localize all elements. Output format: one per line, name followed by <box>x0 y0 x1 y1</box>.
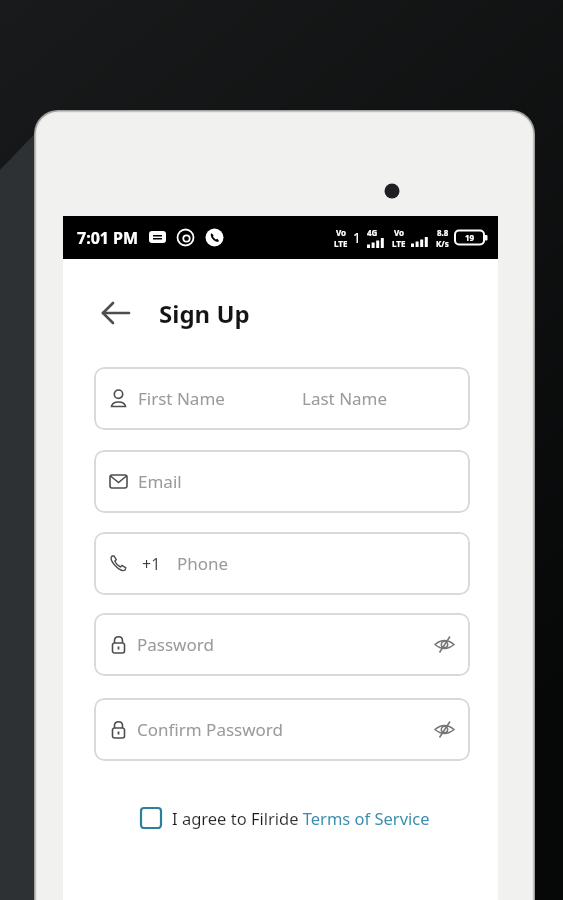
button[interactable]: Password <box>94 613 470 676</box>
staticText: 8.8 <box>437 227 449 238</box>
button[interactable] <box>434 635 455 654</box>
staticText: +1 <box>142 553 161 575</box>
staticText: 19 <box>465 232 475 243</box>
staticText: Password <box>137 633 214 656</box>
staticText: Sign Up <box>159 297 250 330</box>
staticText: Last Name <box>302 387 388 410</box>
button[interactable]: +1 <box>94 532 470 595</box>
button[interactable]: First Name <box>94 367 470 430</box>
staticText: Vo <box>394 227 405 238</box>
staticText: I agree to Filride Terms of Service <box>172 807 430 829</box>
button[interactable] <box>434 720 455 739</box>
staticText: Phone <box>177 552 229 575</box>
staticText: Vo <box>336 227 347 238</box>
staticText: Email <box>138 470 182 493</box>
staticText: 1 <box>353 228 362 247</box>
staticText: 4G <box>367 227 378 238</box>
staticText: LTE <box>334 238 348 249</box>
button[interactable]: Email <box>94 450 470 513</box>
staticText: K/s <box>436 238 449 249</box>
button[interactable]: Confirm Password <box>94 698 470 761</box>
staticText: First Name <box>138 387 225 410</box>
staticText: Confirm Password <box>137 718 283 741</box>
button[interactable]: I agree to Filride Terms of Service <box>140 807 430 829</box>
staticText: LTE <box>392 238 406 249</box>
button[interactable] <box>102 302 130 324</box>
staticText: 7:01 PM <box>77 227 139 249</box>
